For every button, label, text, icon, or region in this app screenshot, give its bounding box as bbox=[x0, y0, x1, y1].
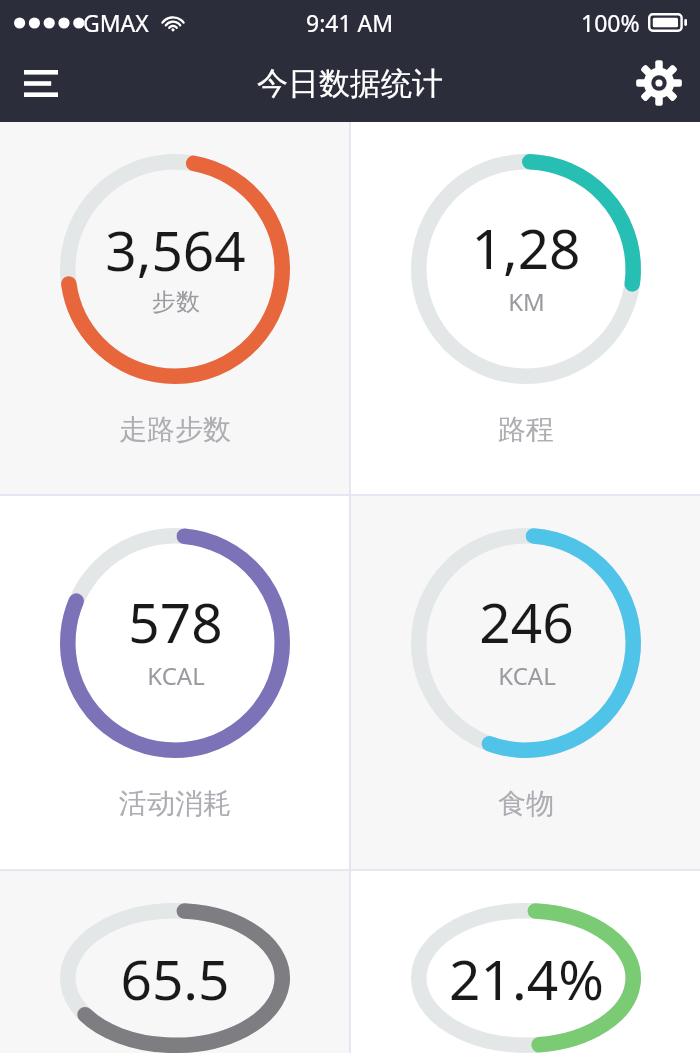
staticText: 100% bbox=[581, 7, 640, 38]
button[interactable]: 65.5 bbox=[0, 871, 349, 1053]
staticText: 步数 bbox=[152, 287, 200, 317]
button[interactable]: 3,564 bbox=[0, 122, 349, 494]
staticText: GMAX bbox=[83, 7, 149, 38]
button[interactable]: 578 bbox=[0, 496, 349, 869]
button[interactable]: Menu bbox=[8, 50, 74, 116]
staticText: KM bbox=[508, 285, 545, 318]
staticText: 3,564 bbox=[105, 212, 246, 287]
button[interactable]: 1,28 bbox=[351, 122, 700, 494]
button[interactable]: Settings bbox=[626, 50, 692, 116]
button[interactable]: 21.4% bbox=[351, 871, 700, 1053]
staticText: 走路步数 bbox=[119, 412, 231, 447]
button[interactable]: 246 bbox=[351, 496, 700, 869]
staticText: 9:41 AM bbox=[306, 7, 394, 38]
staticText: 活动消耗 bbox=[119, 786, 231, 821]
staticText: 21.4% bbox=[449, 941, 604, 1016]
staticText: 246 bbox=[479, 584, 574, 659]
staticText: 食物 bbox=[498, 786, 554, 821]
staticText: 65.5 bbox=[120, 941, 230, 1016]
staticText: 578 bbox=[128, 584, 223, 659]
staticText: 1,28 bbox=[471, 210, 581, 285]
staticText: 路程 bbox=[498, 412, 554, 447]
staticText: KCAL bbox=[147, 659, 205, 692]
staticText: 今日数据统计 bbox=[257, 64, 443, 103]
staticText: KCAL bbox=[498, 659, 556, 692]
